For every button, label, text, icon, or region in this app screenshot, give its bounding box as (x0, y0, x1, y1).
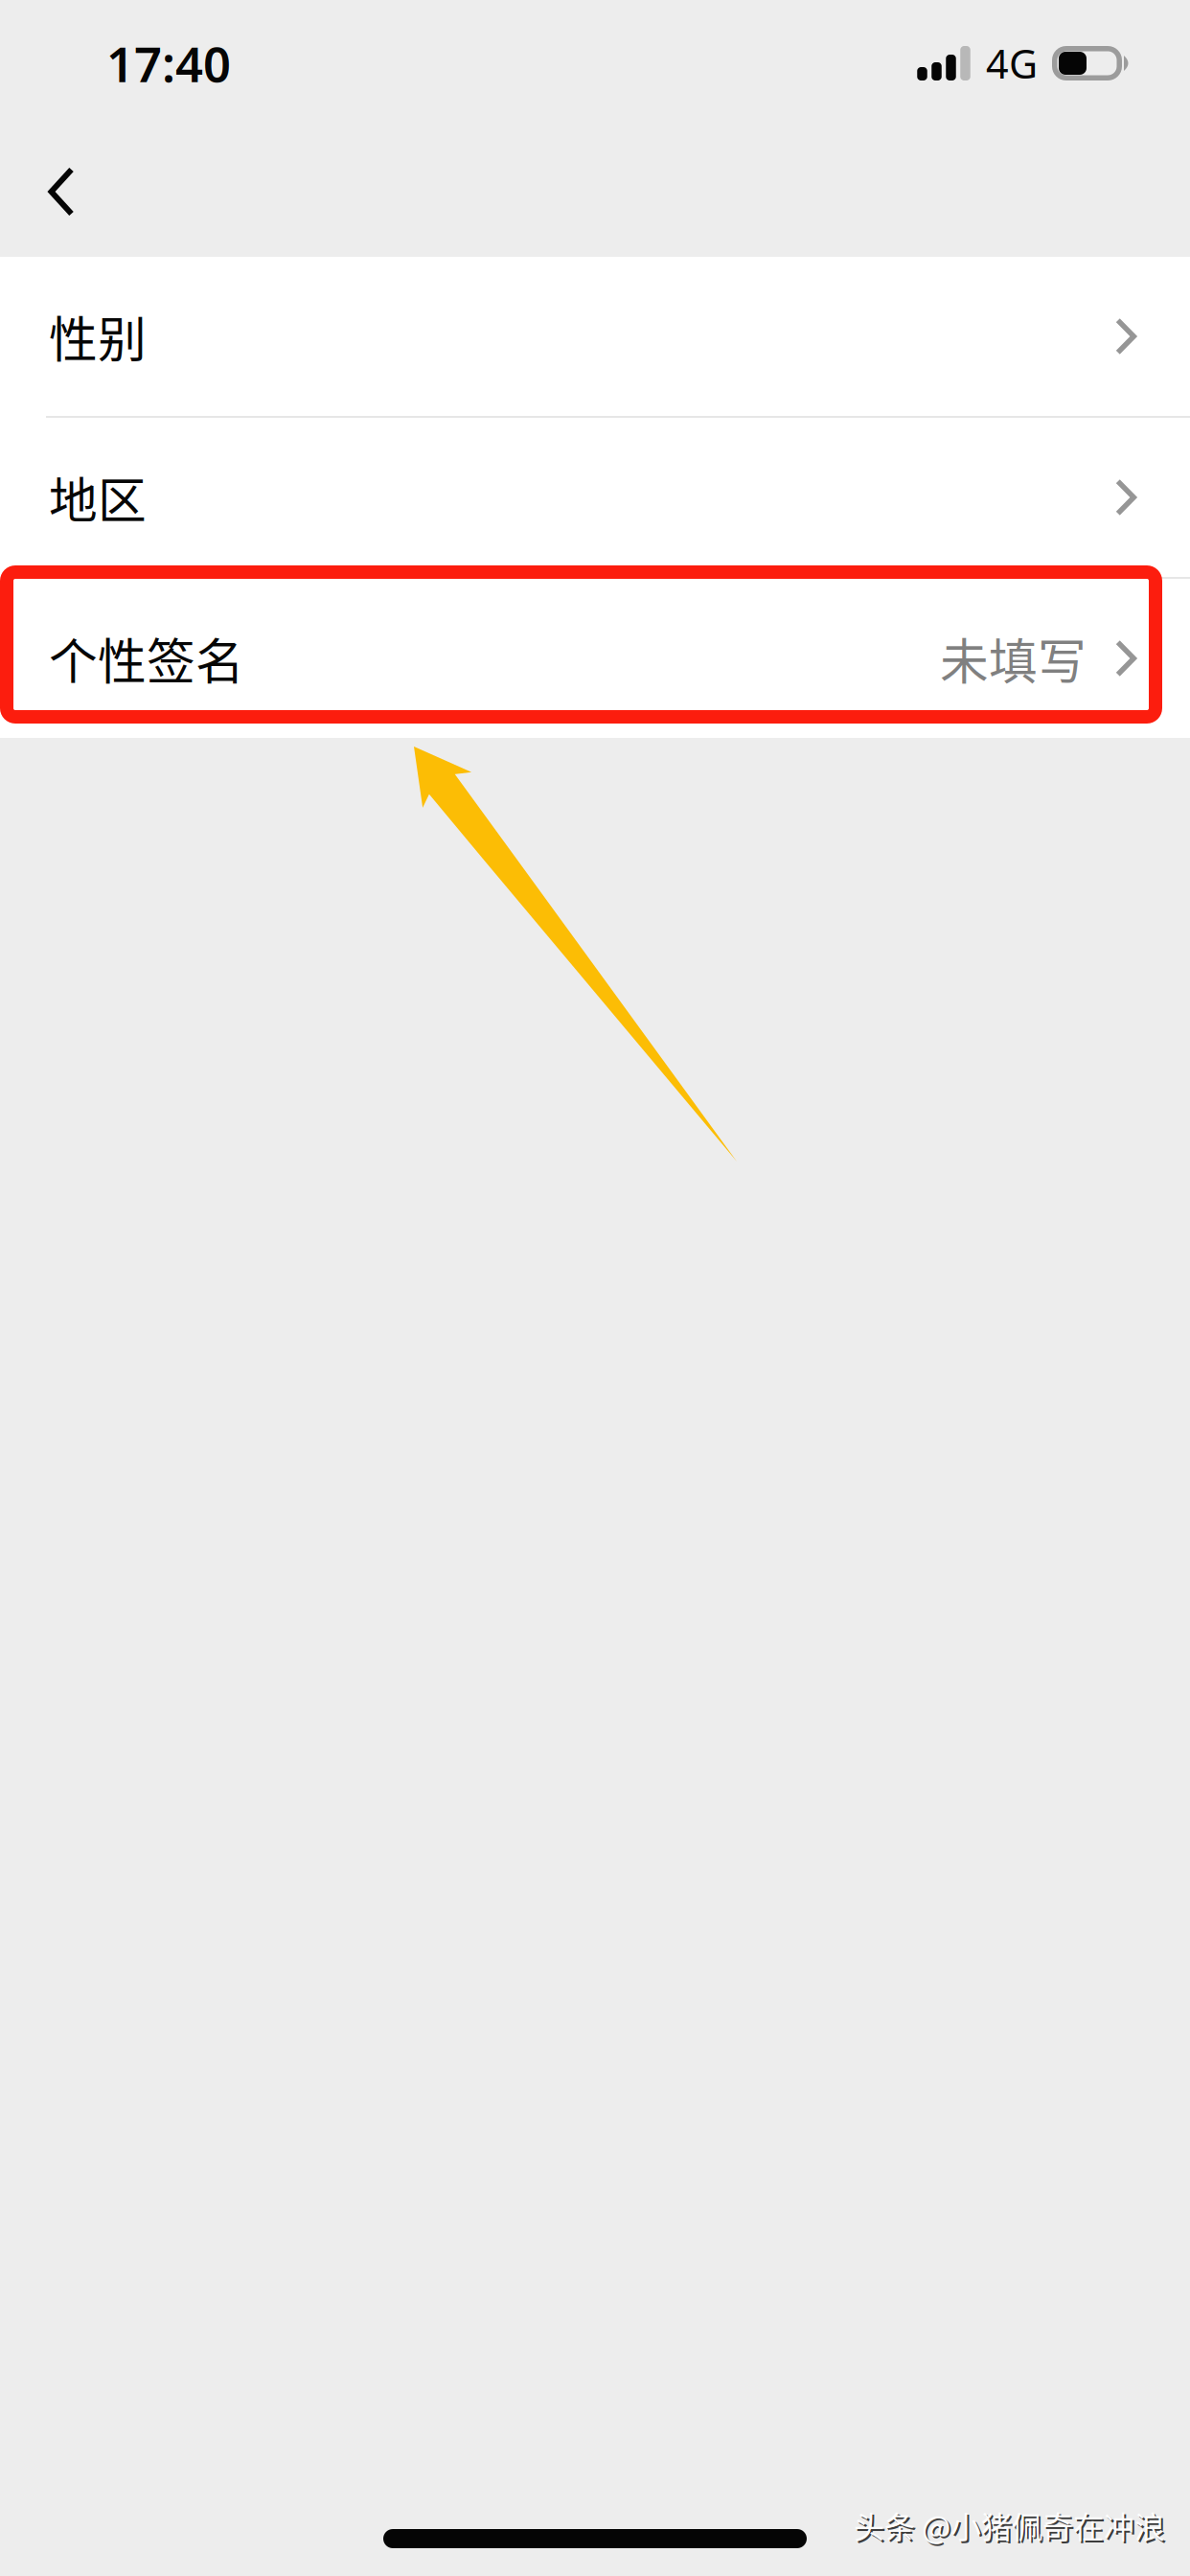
staticText: 未填写 (940, 623, 1087, 694)
staticText: 性别 (49, 301, 147, 372)
staticText: 头条 @小猪佩奇在冲浪 (854, 2503, 1165, 2547)
staticText: 4G (986, 37, 1038, 90)
button[interactable]: Back (0, 126, 123, 257)
staticText: 地区 (49, 462, 147, 533)
button[interactable]: 地区 (0, 418, 1190, 577)
button[interactable]: 性别 (0, 257, 1190, 416)
staticText: 头条 @小猪佩奇在冲浪 (856, 2505, 1167, 2549)
staticText: 17:40 (106, 31, 231, 96)
button[interactable]: 个性签名 (0, 579, 1190, 738)
staticText: 个性签名 (49, 623, 244, 694)
